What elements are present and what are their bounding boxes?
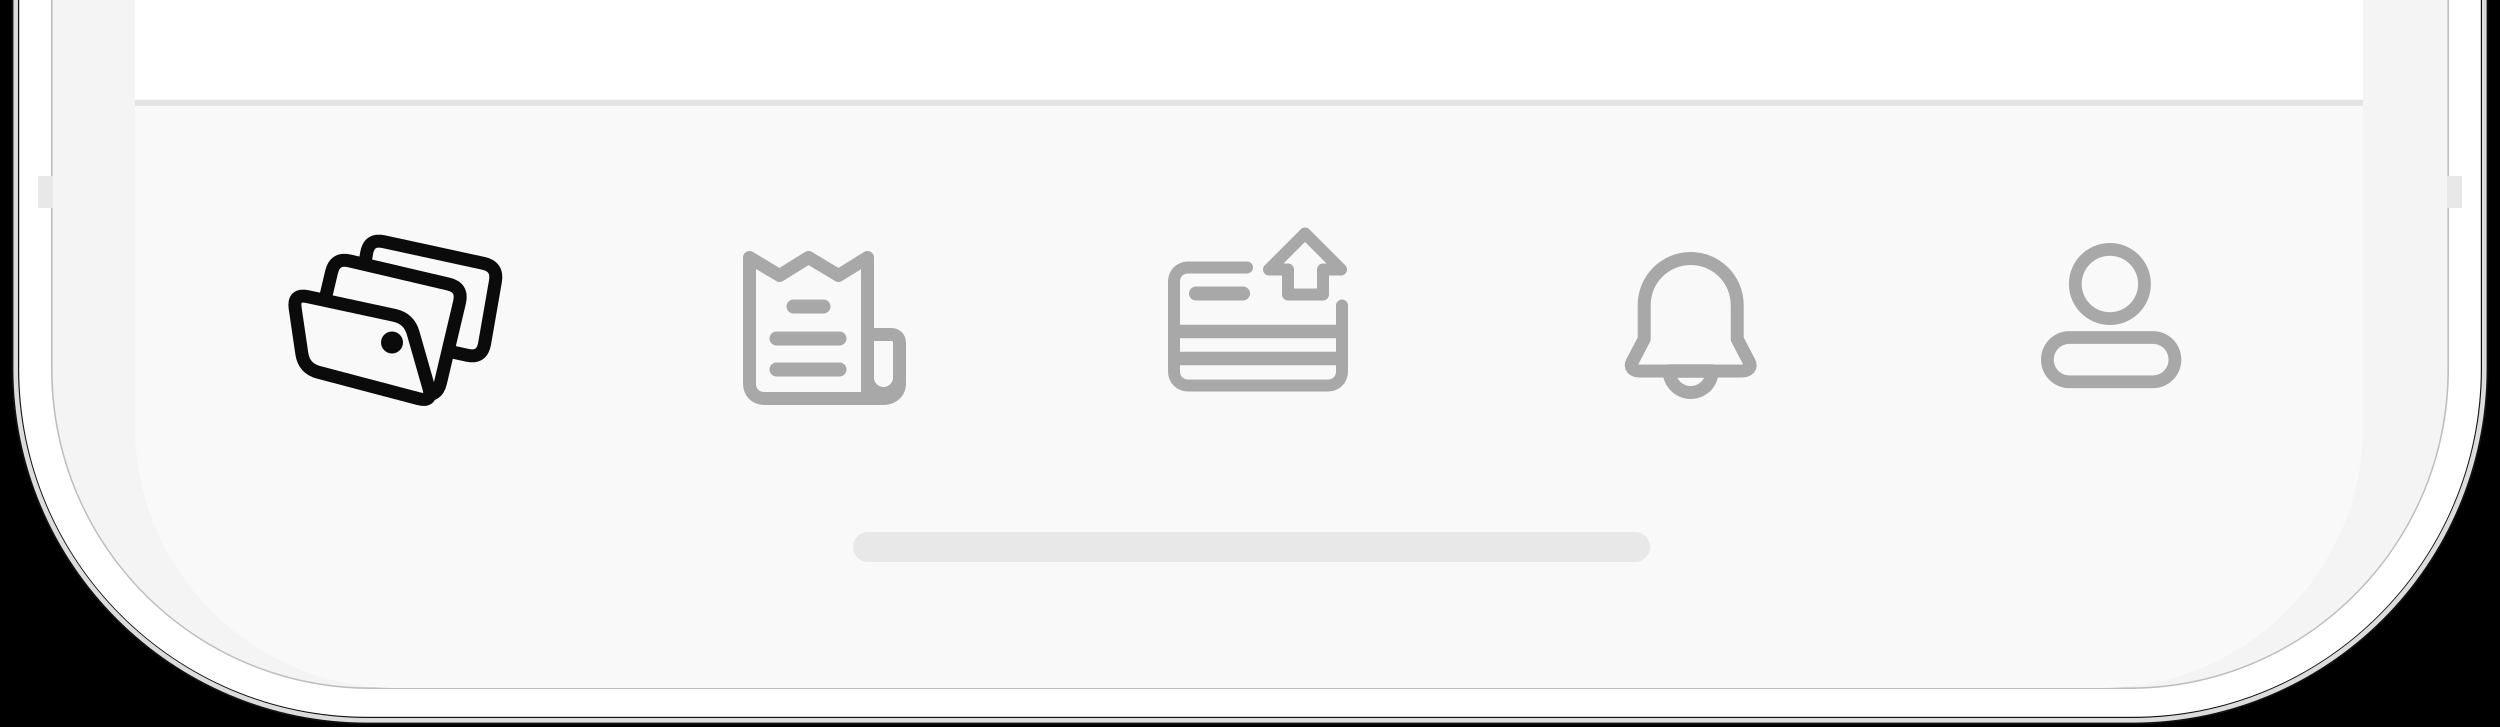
button[interactable]: Profile <box>1897 140 2326 500</box>
button[interactable]: Notifications <box>1468 140 1897 500</box>
button[interactable]: Accounts <box>181 140 610 500</box>
button[interactable]: Transfers <box>1039 140 1468 500</box>
button[interactable]: Statements <box>610 140 1039 500</box>
